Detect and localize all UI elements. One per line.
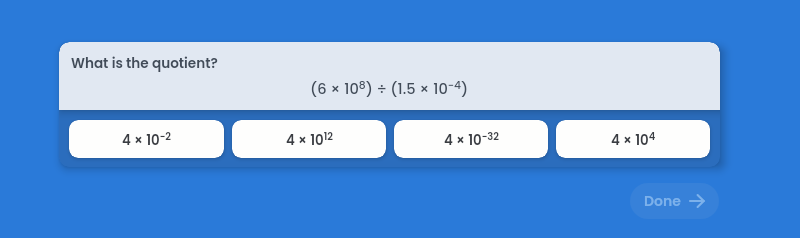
staticText: (6 × 108) ÷ (1.5 × 10−4) xyxy=(310,78,469,99)
staticText: 4 × 104 xyxy=(611,130,656,149)
staticText: 4 × 10−32 xyxy=(444,130,499,149)
staticText: What is the quotient? xyxy=(71,54,218,73)
button[interactable]: 4 × 10−2 xyxy=(69,120,224,158)
button[interactable]: Done xyxy=(630,183,719,219)
staticText: 4 × 1012 xyxy=(286,130,333,149)
other: Next xyxy=(689,193,705,209)
button[interactable]: 4 × 1012 xyxy=(232,120,386,158)
staticText: Done xyxy=(644,191,681,211)
button[interactable]: 4 × 104 xyxy=(556,120,710,158)
staticText: 4 × 10−2 xyxy=(122,130,171,149)
button[interactable]: 4 × 10−32 xyxy=(394,120,548,158)
